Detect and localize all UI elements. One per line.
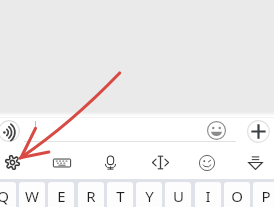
button[interactable]: T [107, 182, 133, 207]
button[interactable]: P [253, 182, 274, 207]
button[interactable]: Move cursor [146, 149, 174, 176]
staticText: Q [0, 186, 9, 206]
button[interactable]: Q [0, 182, 16, 207]
button[interactable]: Y [136, 182, 162, 207]
staticText: W [25, 186, 39, 206]
button[interactable]: U [165, 182, 191, 207]
button[interactable]: Chat features [0, 120, 20, 142]
button[interactable]: Stickers [193, 149, 221, 176]
staticText: T [116, 186, 125, 206]
button[interactable]: Keyboard layout [48, 149, 76, 176]
staticText: Y [145, 186, 154, 206]
button[interactable]: Add attachment [246, 119, 270, 143]
button[interactable]: Voice input [96, 149, 124, 176]
staticText: O [231, 186, 243, 206]
staticText: P [261, 186, 271, 206]
button[interactable]: Emoji [206, 120, 227, 141]
button[interactable]: R [78, 182, 104, 207]
staticText: E [57, 186, 66, 206]
button[interactable]: Settings [0, 149, 26, 176]
staticText: R [86, 186, 96, 206]
staticText: I [205, 186, 211, 206]
button[interactable]: Hide keyboard [241, 149, 269, 176]
staticText: U [173, 186, 184, 206]
button[interactable]: I [195, 182, 221, 207]
button[interactable]: E [48, 182, 74, 207]
button[interactable]: W [19, 182, 45, 207]
button[interactable]: O [224, 182, 250, 207]
